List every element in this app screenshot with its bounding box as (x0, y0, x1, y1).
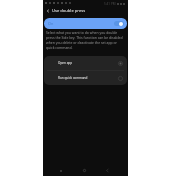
button[interactable]: Back (101, 165, 113, 176)
staticText: Run quick command (58, 76, 88, 80)
button[interactable]: Run quick command (44, 71, 127, 85)
staticText: Use double press (52, 8, 86, 14)
button[interactable]: On (44, 18, 127, 29)
button[interactable]: Recents (55, 165, 67, 176)
button[interactable]: Open app (44, 56, 127, 70)
button[interactable]: Navigate up (43, 6, 52, 15)
staticText: On (48, 21, 54, 26)
button[interactable]: Home (78, 165, 90, 176)
staticText: Select what you want to do when you doub… (46, 30, 125, 50)
staticText: Open app (58, 61, 73, 65)
staticText: 5:41 PM (104, 2, 116, 6)
